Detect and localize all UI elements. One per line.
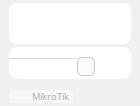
button[interactable]: Toggle: [77, 57, 95, 76]
staticText: MikroTik: [32, 90, 69, 103]
button[interactable]: MikroTik: [9, 90, 73, 103]
